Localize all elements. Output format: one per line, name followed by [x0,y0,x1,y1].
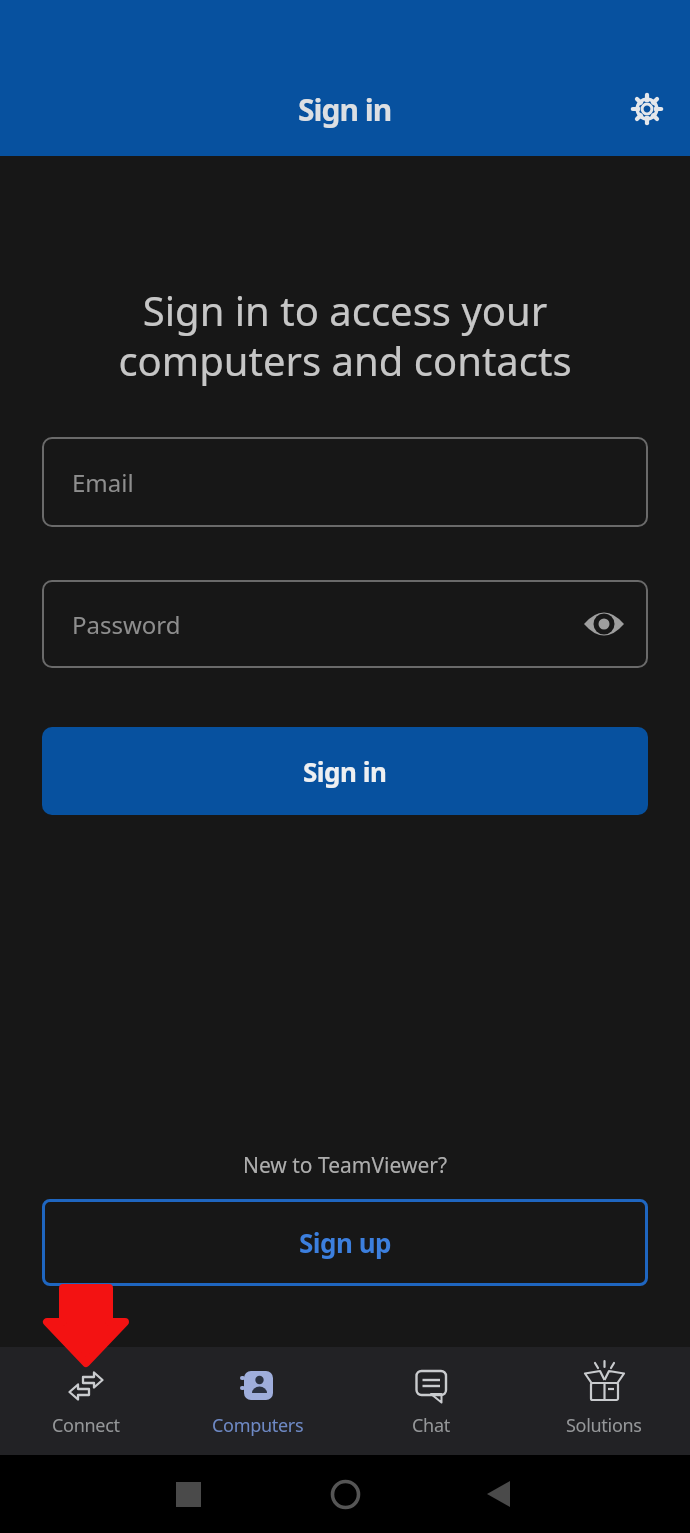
button[interactable] [582,602,626,646]
button[interactable]: Solutions [517,1347,690,1455]
button[interactable] [629,91,665,127]
staticText: Sign in to access your computers and con… [0,283,690,388]
staticText: Sign up [299,1225,392,1260]
staticText: Password [72,608,181,641]
button[interactable]: Sign in [42,727,648,815]
button[interactable] [330,1479,361,1510]
staticText: New to TeamViewer? [0,1151,690,1180]
staticText: Sign in [303,754,387,789]
button[interactable]: Sign up [42,1199,648,1286]
button[interactable]: Password [42,580,648,668]
staticText: Solutions [566,1413,642,1438]
staticText: Connect [52,1413,120,1438]
button[interactable] [486,1481,512,1507]
button[interactable]: Connect [0,1347,172,1455]
staticText: Sign in [298,89,392,130]
staticText: Email [72,466,134,499]
button[interactable]: Email [42,437,648,527]
button[interactable]: Chat [344,1347,517,1455]
button[interactable]: Computers [172,1347,344,1455]
staticText: Computers [212,1413,304,1438]
staticText: Chat [412,1413,450,1438]
